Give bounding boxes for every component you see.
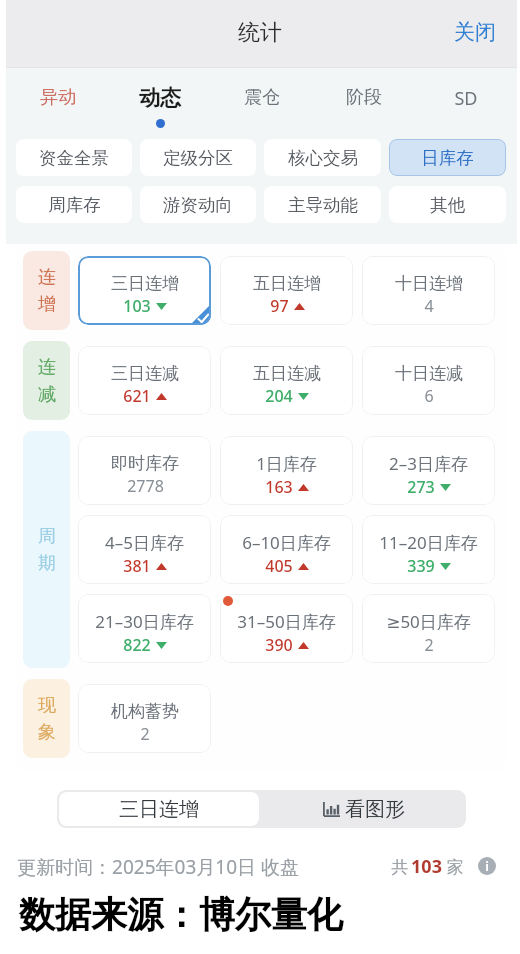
staticText: 震仓 (244, 86, 280, 109)
button[interactable]: 31–50日库存 (220, 594, 353, 663)
button[interactable]: 4–5日库存 (78, 515, 211, 584)
button[interactable]: 三日连减 (78, 346, 211, 415)
staticText: 阶段 (346, 86, 382, 109)
staticText: 2778 (127, 475, 164, 497)
staticText: 数据来源：博尔量化 (19, 892, 343, 937)
button[interactable]: 阶段 (313, 67, 415, 138)
staticText: 103 (123, 295, 151, 317)
staticText: 减 (38, 383, 56, 406)
staticText: 2 (140, 723, 150, 745)
staticText: 十日连增 (395, 273, 463, 294)
button[interactable]: 资金全景 (16, 139, 132, 176)
staticText: 三日连减 (111, 363, 179, 384)
staticText: 即时库存 (111, 453, 179, 474)
button[interactable]: 2–3日库存 (362, 436, 495, 505)
staticText: 4 (424, 295, 434, 317)
button[interactable]: 1日库存 (220, 436, 353, 505)
staticText: 339 (407, 555, 435, 577)
button[interactable]: 五日连增 (220, 256, 353, 325)
staticText: 游资动向 (163, 194, 233, 216)
button[interactable]: 6–10日库存 (220, 515, 353, 584)
button[interactable]: 看图形 (261, 790, 466, 828)
staticText: 6 (424, 385, 434, 407)
staticText: 五日连减 (253, 363, 321, 384)
staticText: i (485, 858, 489, 874)
button[interactable]: 主导动能 (264, 186, 381, 223)
staticText: 其他 (430, 194, 465, 216)
button[interactable]: 日库存 (389, 139, 506, 176)
staticText: 1日库存 (256, 452, 317, 475)
staticText: 关闭 (454, 19, 496, 45)
staticText: 2–3日库存 (389, 452, 468, 475)
staticText: 6–10日库存 (242, 531, 331, 554)
staticText: 三日连增 (119, 797, 199, 822)
staticText: 动态 (139, 85, 181, 111)
staticText: 资金全景 (39, 147, 109, 169)
button[interactable]: 即时库存 (78, 436, 211, 505)
staticText: 日库存 (421, 147, 474, 169)
button[interactable]: 机构蓄势 (78, 684, 211, 753)
button[interactable]: 21–30日库存 (78, 594, 211, 663)
staticText: 统计 (238, 19, 282, 47)
staticText: 204 (265, 385, 293, 407)
button[interactable]: ≥50日库存 (362, 594, 495, 663)
button[interactable]: 十日连增 (362, 256, 495, 325)
button[interactable]: 11–20日库存 (362, 515, 495, 584)
staticText: 390 (265, 634, 293, 656)
staticText: 273 (407, 476, 435, 498)
button[interactable]: 游资动向 (140, 186, 256, 223)
staticText: 主导动能 (288, 194, 358, 216)
staticText: 周库存 (48, 194, 101, 216)
button[interactable]: 定级分区 (140, 139, 256, 176)
button[interactable]: SD (415, 67, 517, 138)
staticText: 共 (389, 855, 411, 878)
staticText: 家 (442, 855, 464, 878)
staticText: 163 (265, 476, 293, 498)
staticText: 期 (38, 552, 56, 575)
staticText: 21–30日库存 (95, 610, 194, 633)
button[interactable]: 核心交易 (264, 139, 381, 176)
staticText: 定级分区 (163, 147, 233, 169)
staticText: 连 (38, 266, 56, 289)
staticText: 现 (38, 694, 56, 717)
staticText: 十日连减 (395, 363, 463, 384)
staticText: 405 (265, 555, 293, 577)
button[interactable]: 异动 (6, 67, 109, 138)
staticText: 97 (270, 295, 289, 317)
staticText: 异动 (40, 86, 76, 109)
button[interactable]: 五日连减 (220, 346, 353, 415)
staticText: SD (454, 86, 478, 111)
staticText: 增 (38, 293, 56, 316)
staticText: 更新时间：2025年03月10日 收盘 (17, 854, 299, 878)
staticText: 周 (38, 525, 56, 548)
staticText: 象 (38, 721, 56, 744)
staticText: 103 (411, 854, 442, 878)
staticText: 11–20日库存 (379, 531, 478, 554)
staticText: ≥50日库存 (386, 610, 471, 633)
staticText: 连 (38, 356, 56, 379)
staticText: 看图形 (345, 797, 405, 822)
button[interactable]: 震仓 (211, 67, 313, 138)
staticText: 381 (123, 555, 151, 577)
staticText: 31–50日库存 (237, 610, 336, 633)
button[interactable]: 关闭 (440, 11, 510, 53)
button[interactable]: 三日连增 (78, 256, 211, 325)
staticText: 621 (123, 385, 151, 407)
button[interactable]: 其他 (389, 186, 506, 223)
staticText: 822 (123, 634, 151, 656)
staticText: 机构蓄势 (111, 701, 179, 722)
staticText: 三日连增 (111, 273, 179, 294)
staticText: 五日连增 (253, 273, 321, 294)
staticText: 2 (424, 634, 434, 656)
button[interactable]: 周库存 (16, 186, 132, 223)
button[interactable]: Info (478, 857, 496, 875)
button[interactable]: 三日连增 (59, 792, 259, 826)
staticText: 核心交易 (288, 147, 358, 169)
staticText: 4–5日库存 (105, 531, 184, 554)
button[interactable]: 动态 (109, 67, 211, 138)
button[interactable]: 十日连减 (362, 346, 495, 415)
